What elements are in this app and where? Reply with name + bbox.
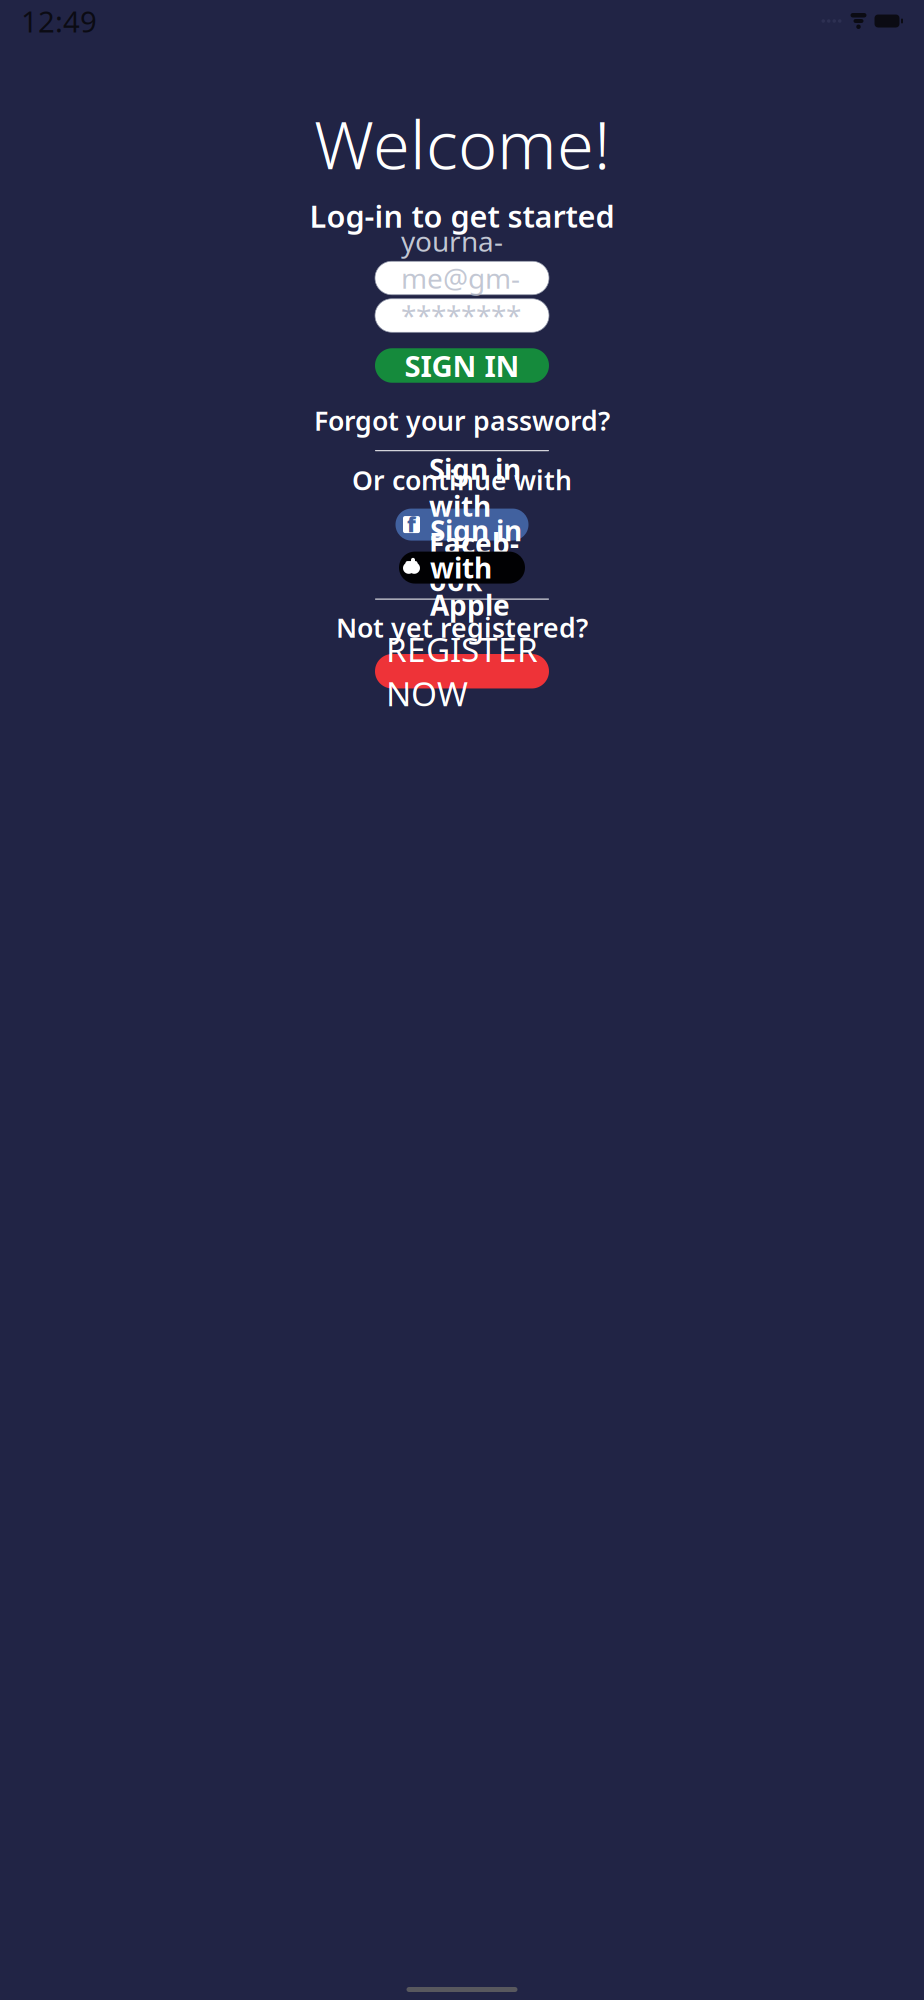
staticText: f — [407, 510, 416, 538]
staticText: Sign in with Apple — [430, 512, 522, 623]
staticText: Log-in to get started — [309, 195, 614, 236]
staticText: ******** — [401, 297, 521, 334]
button[interactable]: Forgot your password? — [314, 401, 610, 440]
staticText: Sign in with Facebook — [429, 450, 521, 599]
staticText: REGISTER NOW — [386, 627, 538, 715]
staticText: Or continue with — [352, 462, 572, 498]
button[interactable]: yourname@gmail.com — [375, 261, 549, 295]
staticText: Not yet registered? — [336, 610, 588, 645]
button[interactable]: ******** — [375, 299, 549, 332]
button[interactable]: REGISTER NOW — [375, 654, 549, 688]
staticText: yourname@gmail.com — [401, 222, 520, 334]
button[interactable]: f — [395, 509, 528, 541]
staticText: SIGN IN — [404, 346, 519, 385]
staticText: Forgot your password? — [314, 403, 610, 438]
button[interactable]: SIGN IN — [375, 348, 549, 383]
button[interactable]: Sign in with Apple — [399, 552, 525, 584]
staticText: Welcome! — [314, 99, 610, 187]
staticText: 12:49 — [21, 1, 97, 40]
